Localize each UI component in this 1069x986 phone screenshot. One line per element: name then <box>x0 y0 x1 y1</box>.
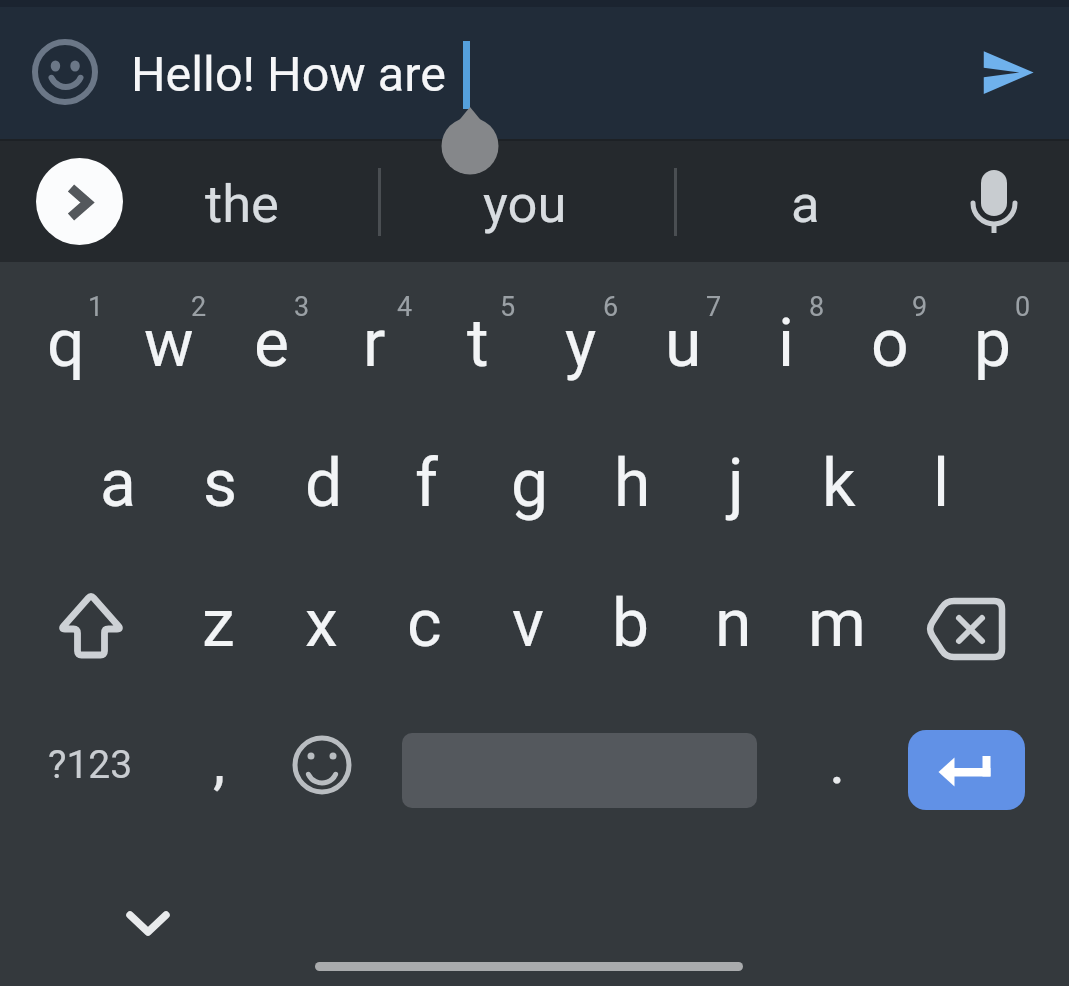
button[interactable]: c <box>373 545 476 685</box>
button[interactable]: j <box>684 405 787 545</box>
staticText: y <box>565 305 597 382</box>
button[interactable]: . <box>786 685 889 825</box>
staticText: k <box>822 445 856 522</box>
staticText: m <box>808 585 866 662</box>
button[interactable]: s <box>169 405 272 545</box>
staticText: , <box>213 725 226 798</box>
staticText: a <box>791 173 820 235</box>
button[interactable]: u <box>632 265 735 405</box>
button[interactable]: , <box>168 685 271 825</box>
button[interactable]: r <box>323 265 426 405</box>
button[interactable]: you <box>435 139 615 262</box>
button[interactable]: e <box>220 265 323 405</box>
button[interactable] <box>955 20 1059 124</box>
button[interactable]: k <box>787 405 890 545</box>
button[interactable]: p <box>941 265 1044 405</box>
button[interactable] <box>36 158 123 245</box>
button[interactable]: f <box>375 405 478 545</box>
staticText: 1 <box>88 291 104 323</box>
staticText: v <box>512 585 544 662</box>
staticText: c <box>407 585 442 662</box>
button[interactable]: i <box>735 265 838 405</box>
button[interactable]: q <box>14 265 117 405</box>
staticText: i <box>778 305 795 382</box>
staticText: q <box>47 305 85 382</box>
staticText: l <box>933 445 950 522</box>
staticText: you <box>483 173 567 235</box>
staticText: f <box>415 445 438 522</box>
staticText: z <box>202 585 235 662</box>
staticText: g <box>511 445 549 522</box>
staticText: u <box>665 305 702 382</box>
staticText: 5 <box>500 291 516 323</box>
button[interactable]: x <box>270 545 373 685</box>
button[interactable]: the <box>152 139 332 262</box>
staticText: 2 <box>191 291 207 323</box>
staticText: 9 <box>912 291 928 323</box>
staticText: the <box>205 173 279 235</box>
button[interactable]: y <box>529 265 632 405</box>
button[interactable] <box>13 545 155 685</box>
staticText: s <box>203 445 238 522</box>
staticText: . <box>829 725 846 798</box>
button[interactable]: w <box>117 265 220 405</box>
button[interactable]: ?123 <box>19 685 161 825</box>
staticText: p <box>974 305 1012 382</box>
button[interactable]: g <box>478 405 581 545</box>
button[interactable] <box>908 730 1025 810</box>
staticText: h <box>614 445 651 522</box>
button[interactable]: o <box>838 265 941 405</box>
staticText: 4 <box>397 291 413 323</box>
staticText: n <box>715 585 752 662</box>
button[interactable] <box>270 685 373 825</box>
button[interactable]: a <box>66 405 169 545</box>
button[interactable] <box>100 875 196 970</box>
button[interactable]: v <box>476 545 579 685</box>
button[interactable]: m <box>785 545 888 685</box>
button[interactable] <box>914 545 1056 685</box>
button[interactable]: t <box>426 265 529 405</box>
staticText: d <box>305 445 343 522</box>
staticText: 7 <box>706 291 722 323</box>
button[interactable]: d <box>272 405 375 545</box>
staticText: b <box>612 585 650 662</box>
staticText: Hello! How are <box>131 46 446 103</box>
staticText: ?123 <box>48 742 133 788</box>
staticText: 6 <box>603 291 619 323</box>
button[interactable] <box>20 27 110 117</box>
staticText: j <box>728 445 744 522</box>
staticText: r <box>363 305 386 382</box>
button[interactable]: b <box>579 545 682 685</box>
button[interactable]: h <box>581 405 684 545</box>
staticText: 3 <box>294 291 310 323</box>
staticText: w <box>144 305 194 382</box>
button[interactable]: n <box>682 545 785 685</box>
staticText: 0 <box>1015 291 1031 323</box>
staticText: t <box>467 305 489 382</box>
staticText: a <box>100 445 136 522</box>
staticText: x <box>305 585 338 662</box>
button[interactable] <box>950 150 1040 250</box>
button[interactable]: a <box>715 139 895 262</box>
staticText: e <box>254 305 289 382</box>
staticText: 8 <box>809 291 825 323</box>
button[interactable]: l <box>890 405 993 545</box>
staticText: o <box>871 305 909 382</box>
button[interactable]: z <box>167 545 270 685</box>
